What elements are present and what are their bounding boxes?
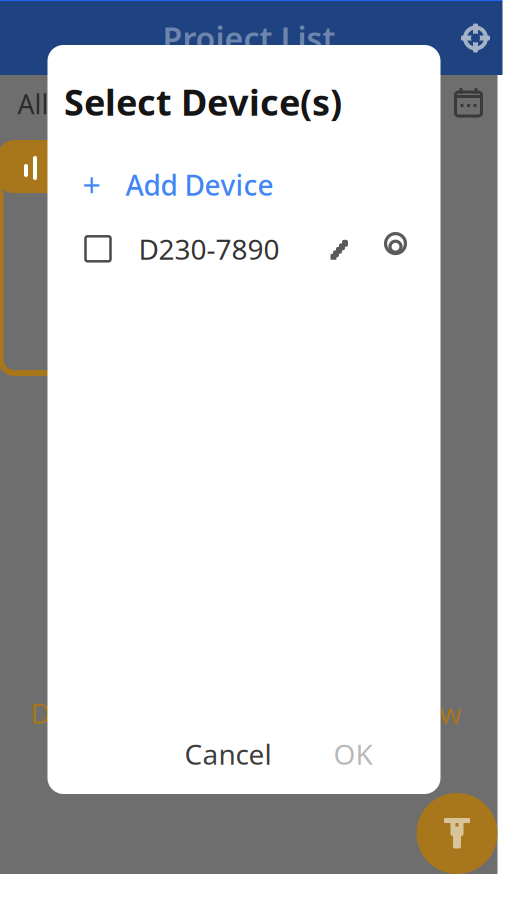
staticText: Cancel xyxy=(184,735,271,773)
staticText: Preview xyxy=(360,694,461,732)
button[interactable]: Upload xyxy=(416,793,497,874)
button[interactable]: OK xyxy=(321,725,384,783)
button[interactable]: + xyxy=(47,165,440,205)
staticText: + xyxy=(82,164,100,206)
button[interactable]: Preview xyxy=(346,684,475,742)
staticText: Add Device xyxy=(125,166,273,203)
button[interactable]: D230-7890 xyxy=(47,227,440,271)
button[interactable]: Calendar xyxy=(446,82,490,126)
button[interactable]: Cancel xyxy=(172,725,283,783)
staticText: Carrier xyxy=(9,0,79,2)
button[interactable]: Delete xyxy=(16,684,129,742)
staticText: Project List xyxy=(162,17,335,59)
staticText: D230-7890 xyxy=(138,230,279,267)
staticText: Delete xyxy=(30,694,115,732)
staticText: All S xyxy=(17,86,70,122)
staticText: Select Device(s) xyxy=(64,78,342,126)
button[interactable]: Settings xyxy=(453,16,497,60)
staticText: OK xyxy=(333,735,372,773)
staticText: 3:09 PM xyxy=(230,0,311,2)
